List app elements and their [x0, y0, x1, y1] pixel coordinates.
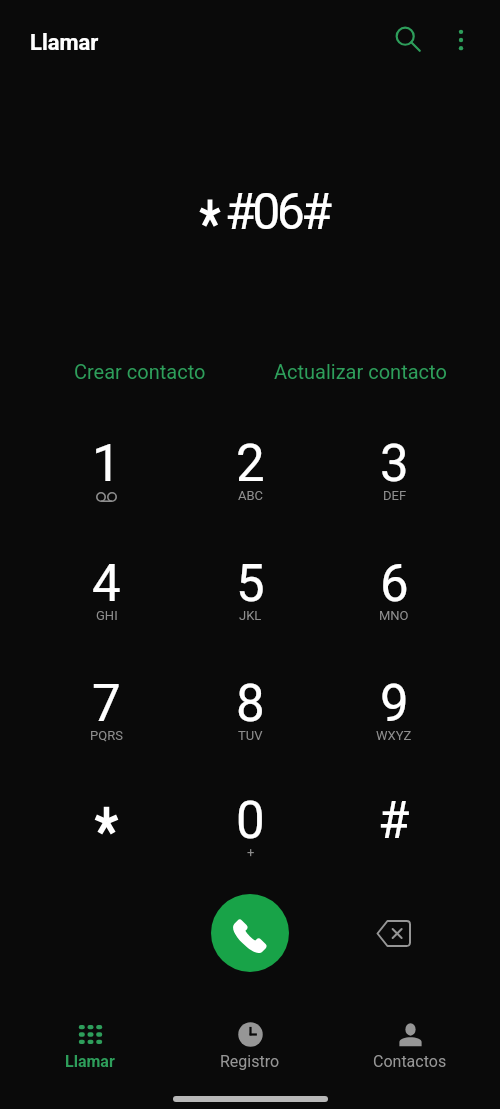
- staticText: JKL: [239, 608, 262, 623]
- button[interactable]: [34, 777, 178, 897]
- staticText: 5: [236, 554, 265, 614]
- staticText: Contactos: [373, 1052, 447, 1071]
- button[interactable]: Llamar: [10, 1019, 170, 1074]
- staticText: 4: [92, 554, 121, 614]
- staticText: 3: [380, 434, 409, 494]
- staticText: TUV: [238, 728, 263, 743]
- staticText: Registro: [220, 1052, 280, 1071]
- staticText: 0: [236, 791, 265, 851]
- staticText: 7: [92, 674, 121, 734]
- button[interactable]: Crear contacto: [30, 349, 250, 393]
- button[interactable]: Contactos: [330, 1019, 490, 1074]
- button[interactable]: Más opciones: [439, 18, 483, 62]
- staticText: Actualizar contacto: [274, 360, 447, 383]
- button[interactable]: #: [322, 777, 466, 897]
- button[interactable]: Actualizar contacto: [250, 349, 470, 393]
- staticText: #: [378, 791, 410, 851]
- button[interactable]: Registro: [170, 1019, 330, 1074]
- staticText: WXYZ: [376, 728, 412, 743]
- staticText: DEF: [383, 488, 407, 503]
- button[interactable]: Llamar: [211, 894, 289, 972]
- staticText: Llamar: [30, 30, 99, 56]
- button[interactable]: 2: [178, 420, 322, 540]
- staticText: PQRS: [90, 728, 123, 743]
- button[interactable]: Buscar: [387, 14, 439, 66]
- button[interactable]: 9: [322, 660, 466, 780]
- staticText: 1: [92, 434, 121, 494]
- staticText: 2: [236, 434, 265, 494]
- button[interactable]: 3: [322, 420, 466, 540]
- staticText: GHI: [96, 608, 118, 623]
- staticText: +: [247, 845, 255, 860]
- staticText: ABC: [238, 488, 264, 503]
- button[interactable]: 0: [178, 777, 322, 897]
- staticText: 8: [236, 674, 265, 734]
- staticText: MNO: [379, 608, 409, 623]
- staticText: 9: [380, 674, 409, 734]
- button[interactable]: Borrar: [364, 905, 421, 962]
- staticText: Crear contacto: [74, 360, 206, 383]
- button[interactable]: 6: [322, 540, 466, 660]
- button[interactable]: 5: [178, 540, 322, 660]
- button[interactable]: 1: [34, 420, 178, 540]
- button[interactable]: 8: [178, 660, 322, 780]
- button[interactable]: 7: [34, 660, 178, 780]
- staticText: Llamar: [65, 1052, 115, 1071]
- button[interactable]: 4: [34, 540, 178, 660]
- staticText: #06#: [225, 183, 329, 242]
- staticText: 6: [380, 554, 409, 614]
